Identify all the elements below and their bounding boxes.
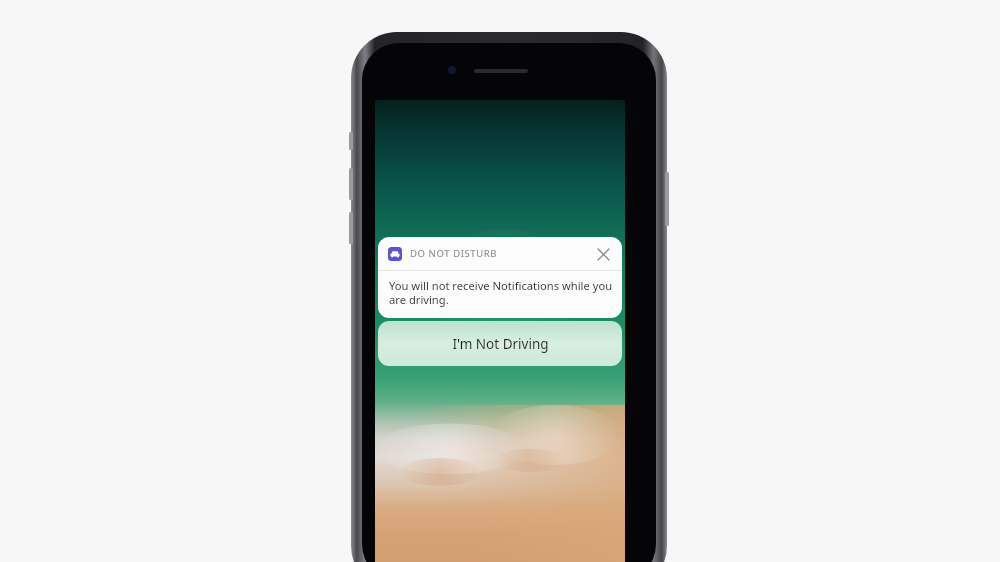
staticText: I'm Not Driving — [452, 335, 549, 353]
button[interactable]: Close — [593, 244, 613, 264]
staticText: You will not receive Notifications while… — [389, 278, 613, 308]
staticText: DO NOT DISTURB — [410, 247, 498, 260]
button[interactable]: I'm Not Driving — [378, 321, 622, 366]
button[interactable]: DO NOT DISTURB — [378, 237, 622, 318]
